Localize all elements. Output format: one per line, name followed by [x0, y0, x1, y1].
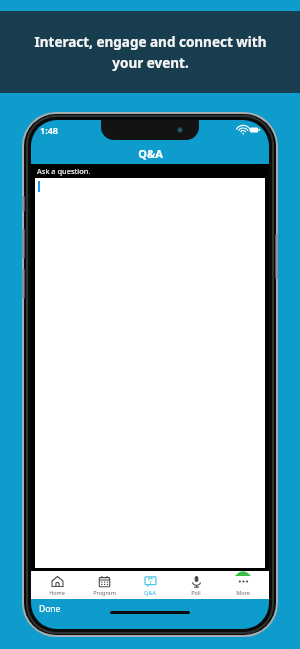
button[interactable]: Q&A	[130, 571, 170, 599]
button[interactable]: Poll	[176, 571, 216, 599]
staticText: Q&A	[138, 146, 163, 161]
staticText: Done	[39, 603, 61, 615]
staticText: Program	[93, 589, 116, 596]
button[interactable]: Program	[84, 571, 124, 599]
staticText: Poll	[191, 589, 201, 596]
button[interactable]: Done	[39, 603, 61, 615]
staticText: 1:48	[40, 124, 58, 136]
staticText: Home	[49, 589, 65, 596]
staticText: More	[236, 589, 250, 596]
staticText: Ask a question.	[37, 166, 91, 176]
staticText: Interact, engage and connect with	[34, 33, 267, 51]
button[interactable]: Home	[37, 571, 77, 599]
staticText: Q&A	[144, 589, 156, 596]
staticText: your event.	[112, 54, 189, 72]
button[interactable]	[35, 178, 265, 568]
button[interactable]: More	[223, 571, 263, 599]
